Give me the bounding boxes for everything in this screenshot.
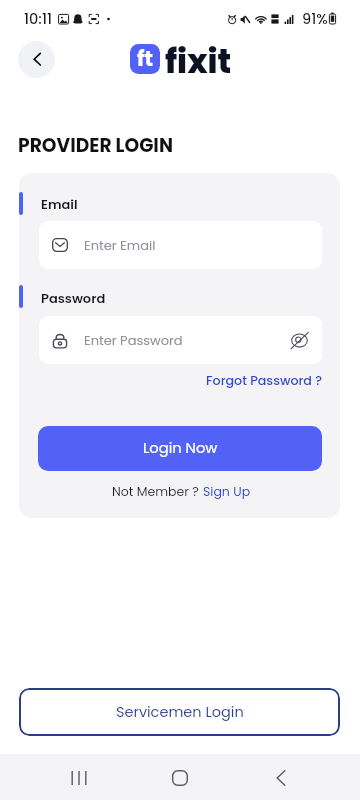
button[interactable]: Sign Up xyxy=(203,483,251,500)
staticText: Enter Password xyxy=(84,331,183,349)
staticText: fixit xyxy=(165,39,232,85)
staticText: Enter Email xyxy=(84,236,156,254)
button[interactable]: Login Now xyxy=(38,426,322,471)
staticText: Email xyxy=(41,195,78,213)
button[interactable]: Forgot Password ? xyxy=(206,372,323,390)
staticText: 10:11 xyxy=(24,9,53,29)
button[interactable]: Show password xyxy=(289,330,310,351)
staticText: Not Member ? xyxy=(112,483,203,500)
staticText: Login Now xyxy=(143,438,218,459)
button[interactable]: Home xyxy=(160,758,200,798)
button[interactable]: Back xyxy=(18,41,55,78)
button[interactable]: Recent apps xyxy=(59,758,99,798)
staticText: PROVIDER LOGIN xyxy=(18,132,173,158)
button[interactable]: Go back xyxy=(261,758,301,798)
staticText: ft xyxy=(137,44,154,73)
staticText: 91% xyxy=(302,9,328,29)
staticText: Servicemen Login xyxy=(116,702,244,722)
button[interactable]: Servicemen Login xyxy=(19,688,340,736)
staticText: Password xyxy=(41,289,106,307)
button[interactable]: Enter Email xyxy=(39,221,322,269)
button[interactable]: Enter Password xyxy=(39,316,322,364)
